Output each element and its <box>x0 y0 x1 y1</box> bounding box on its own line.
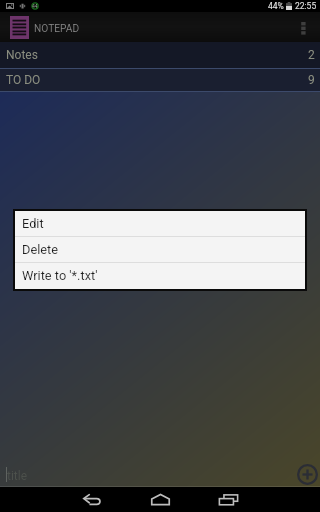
staticText: TO DO <box>6 73 41 87</box>
staticText: 2 <box>308 48 315 62</box>
button[interactable]: Home <box>140 487 180 512</box>
button[interactable]: More options <box>298 12 320 42</box>
staticText: Notes <box>6 48 38 62</box>
button[interactable]: NOTEPAD <box>0 12 80 42</box>
button[interactable]: TO DO <box>0 69 320 91</box>
staticText: Write to '*.txt' <box>22 268 98 283</box>
staticText: 9 <box>308 73 315 87</box>
staticText: Delete <box>22 242 59 257</box>
staticText: Edit <box>22 216 44 231</box>
staticText: NOTEPAD <box>34 23 80 35</box>
button[interactable]: Write to '*.txt' <box>15 263 305 288</box>
staticText: title <box>7 469 28 483</box>
button[interactable]: Delete <box>15 237 305 262</box>
staticText: 44 <box>32 3 38 9</box>
button[interactable]: Back <box>72 487 112 512</box>
button[interactable]: Edit <box>15 211 305 236</box>
button[interactable]: Add note <box>296 463 318 485</box>
button[interactable]: Notes <box>0 42 320 68</box>
button[interactable]: Recents <box>208 487 248 512</box>
staticText: 44% <box>268 1 284 11</box>
staticText: 22:55 <box>295 1 317 11</box>
